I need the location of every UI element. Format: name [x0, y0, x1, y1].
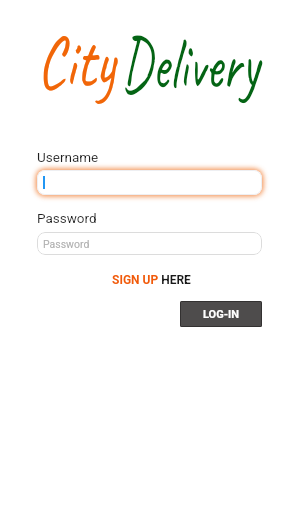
staticText: Password [43, 238, 90, 250]
staticText: City [37, 15, 115, 109]
staticText: Delivery [121, 17, 260, 111]
button[interactable]: LOG-IN [180, 301, 262, 327]
staticText: Username [37, 149, 99, 165]
staticText: LOG-IN [203, 308, 240, 321]
button[interactable]: SIGN UP HERE [112, 273, 191, 287]
button[interactable]: Password [37, 232, 262, 255]
button[interactable] [37, 170, 262, 195]
staticText: Password [37, 210, 97, 226]
